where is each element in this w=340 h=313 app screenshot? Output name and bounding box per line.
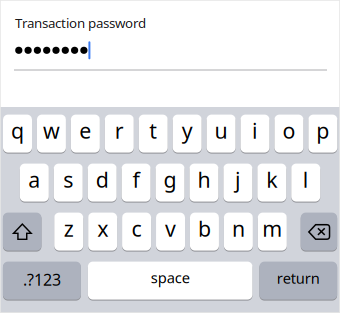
- button[interactable]: i: [240, 115, 269, 154]
- button[interactable]: p: [308, 115, 337, 154]
- button[interactable]: c: [122, 213, 151, 252]
- button[interactable]: o: [274, 115, 303, 154]
- button[interactable]: s: [54, 164, 83, 203]
- staticText: r: [115, 116, 124, 144]
- staticText: q: [11, 116, 24, 144]
- staticText: u: [215, 116, 228, 144]
- button[interactable]: l: [291, 164, 320, 203]
- staticText: z: [64, 214, 74, 242]
- staticText: b: [198, 214, 211, 242]
- button[interactable]: m: [258, 213, 287, 252]
- staticText: e: [79, 116, 91, 144]
- button[interactable]: e: [71, 115, 100, 154]
- button[interactable]: z: [54, 213, 83, 252]
- staticText: l: [303, 165, 309, 193]
- staticText: o: [282, 116, 295, 144]
- staticText: space: [151, 268, 190, 287]
- staticText: t: [149, 116, 157, 144]
- button[interactable]: q: [3, 115, 32, 154]
- button[interactable]: d: [88, 164, 117, 203]
- button[interactable]: r: [105, 115, 134, 154]
- staticText: return: [277, 268, 320, 288]
- staticText: s: [63, 165, 73, 193]
- button[interactable]: y: [173, 115, 202, 154]
- button[interactable]: t: [139, 115, 168, 154]
- button[interactable]: u: [207, 115, 236, 154]
- staticText: k: [266, 165, 277, 193]
- staticText: y: [182, 116, 193, 144]
- button[interactable]: j: [223, 164, 252, 203]
- button[interactable]: k: [257, 164, 286, 203]
- staticText: h: [197, 165, 210, 193]
- button[interactable]: a: [20, 164, 49, 203]
- staticText: n: [232, 214, 245, 242]
- staticText: p: [316, 116, 329, 144]
- button[interactable]: Shift: [3, 213, 41, 252]
- staticText: Transaction password: [15, 14, 146, 32]
- staticText: w: [43, 116, 60, 144]
- staticText: d: [96, 165, 109, 193]
- staticText: g: [163, 165, 176, 193]
- button[interactable]: return: [259, 262, 337, 301]
- staticText: j: [235, 165, 241, 193]
- staticText: c: [132, 214, 142, 242]
- button[interactable]: f: [122, 164, 151, 203]
- button[interactable]: n: [224, 213, 253, 252]
- button[interactable]: .?123: [3, 262, 81, 301]
- button[interactable]: h: [189, 164, 218, 203]
- button[interactable]: Delete: [301, 213, 337, 252]
- staticText: a: [28, 165, 40, 193]
- button[interactable]: space: [88, 262, 252, 301]
- staticText: i: [252, 116, 258, 144]
- staticText: x: [97, 214, 108, 242]
- staticText: f: [133, 165, 140, 193]
- button[interactable]: x: [88, 213, 117, 252]
- button[interactable]: w: [37, 115, 66, 154]
- staticText: .?123: [23, 269, 61, 290]
- button[interactable]: v: [156, 213, 185, 252]
- button[interactable]: b: [190, 213, 219, 252]
- staticText: m: [262, 214, 282, 242]
- staticText: v: [165, 214, 176, 242]
- button[interactable]: g: [155, 164, 184, 203]
